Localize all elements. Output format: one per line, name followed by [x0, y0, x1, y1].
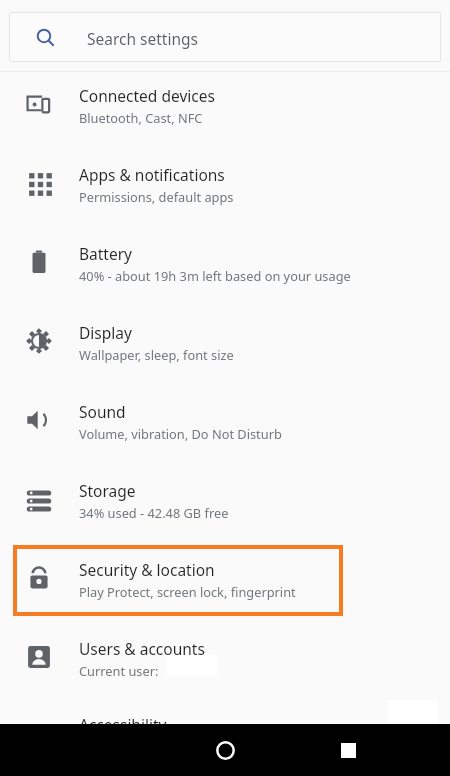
staticText: Users & accounts — [79, 638, 205, 659]
button[interactable]: Battery — [0, 235, 450, 314]
button[interactable]: Search settings — [9, 12, 441, 62]
button[interactable]: Users & accounts — [0, 630, 450, 709]
staticText: Display — [79, 322, 132, 343]
button[interactable]: Sound — [0, 393, 450, 472]
button[interactable]: Connected devices — [0, 77, 450, 156]
staticText: Bluetooth, Cast, NFC — [79, 109, 203, 126]
staticText: Accessibility — [79, 714, 167, 735]
staticText: Permissions, default apps — [79, 188, 234, 205]
staticText: Apps & notifications — [79, 164, 225, 185]
staticText: Current user: — [79, 662, 159, 679]
button[interactable]: Apps & notifications — [0, 156, 450, 235]
button[interactable]: Home — [204, 724, 246, 776]
staticText: 34% used - 42.48 GB free — [79, 504, 229, 521]
staticText: Play Protect, screen lock, fingerprint — [79, 583, 296, 600]
staticText: Wallpaper, sleep, font size — [79, 346, 234, 363]
button[interactable]: Security & location — [0, 551, 450, 630]
button[interactable]: Recent apps — [327, 724, 369, 776]
staticText: Battery — [79, 243, 133, 264]
staticText: Volume, vibration, Do Not Disturb — [79, 425, 282, 442]
button[interactable]: Storage — [0, 472, 450, 551]
staticText: Sound — [79, 401, 126, 422]
staticText: 40% - about 19h 3m left based on your us… — [79, 267, 351, 284]
button[interactable]: Display — [0, 314, 450, 393]
staticText: Connected devices — [79, 85, 215, 106]
staticText: Search settings — [87, 28, 198, 49]
staticText: Storage — [79, 480, 136, 501]
staticText: Security & location — [79, 559, 215, 580]
